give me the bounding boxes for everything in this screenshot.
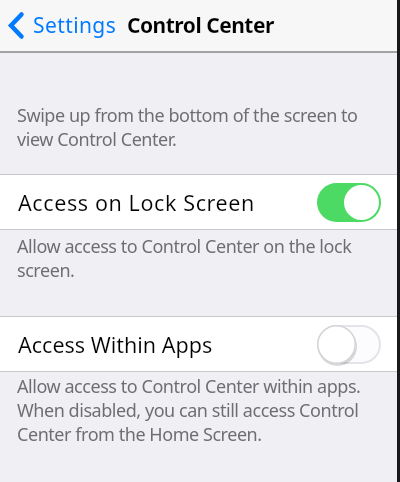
button[interactable] xyxy=(317,325,381,364)
button[interactable]: Settings xyxy=(0,11,117,40)
button[interactable]: Access Within Apps xyxy=(0,317,400,371)
button[interactable]: Access on Lock Screen xyxy=(0,175,400,229)
staticText: Swipe up from the bottom of the screen t… xyxy=(17,103,358,151)
staticText: Access on Lock Screen xyxy=(18,188,255,217)
button[interactable] xyxy=(317,183,381,222)
staticText: Allow access to Control Center on the lo… xyxy=(17,234,352,282)
staticText: Settings xyxy=(33,11,117,40)
staticText: Control Center xyxy=(127,11,274,40)
staticText: Access Within Apps xyxy=(18,330,213,359)
staticText: Allow access to Control Center within ap… xyxy=(17,374,361,446)
